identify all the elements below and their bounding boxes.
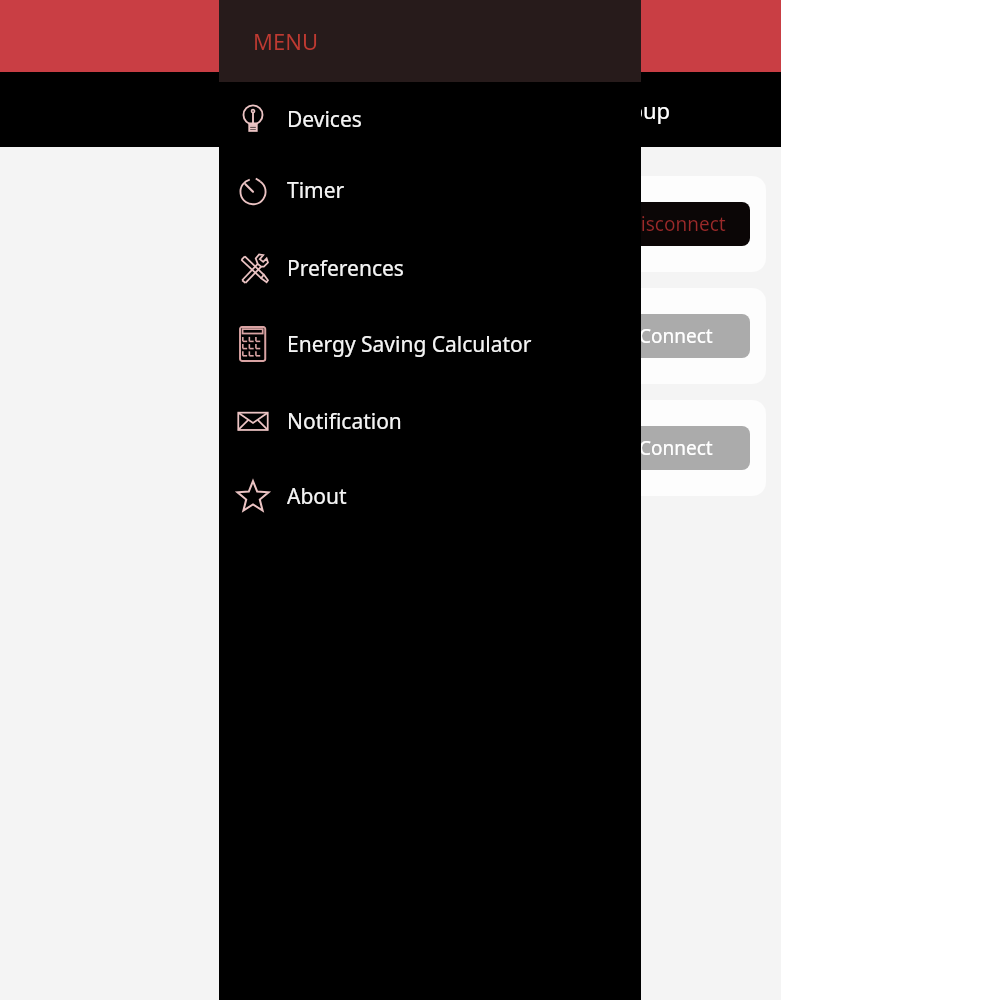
staticText: Connect: [639, 435, 713, 461]
button[interactable]: Timer: [219, 159, 641, 221]
staticText: Preferences: [287, 254, 404, 283]
staticText: Notification: [287, 407, 402, 436]
button[interactable]: Disconnect: [588, 176, 766, 272]
button[interactable]: Connect: [602, 314, 750, 358]
button[interactable]: Connect: [588, 400, 766, 496]
button[interactable]: Connect: [588, 288, 766, 384]
staticText: Energy Saving Calculator: [287, 330, 532, 359]
staticText: Timer: [287, 176, 345, 205]
button[interactable]: MENU: [219, 0, 641, 82]
button[interactable]: Disconnect: [602, 202, 750, 246]
staticText: About: [287, 482, 347, 511]
button[interactable]: Notification: [219, 390, 641, 452]
button[interactable]: About: [219, 465, 641, 527]
button[interactable]: Preferences: [219, 237, 641, 299]
staticText: Group: [605, 95, 671, 125]
button[interactable]: Devices: [219, 88, 641, 150]
button[interactable]: Connect: [602, 426, 750, 470]
staticText: Devices: [287, 105, 362, 134]
staticText: MENU: [253, 26, 318, 56]
staticText: Connect: [639, 323, 713, 349]
staticText: Disconnect: [627, 211, 726, 237]
button[interactable]: Energy Saving Calculator: [219, 313, 641, 375]
